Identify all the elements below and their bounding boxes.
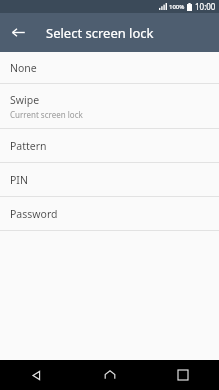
button[interactable]: None (0, 52, 219, 83)
staticText: PIN (10, 173, 28, 187)
staticText: Select screen lock (46, 24, 154, 42)
staticText: Swipe (10, 93, 40, 107)
staticText: Pattern (10, 139, 47, 153)
staticText: Current screen lock (10, 109, 83, 120)
button[interactable]: Password (0, 197, 219, 230)
staticText: 100% (169, 3, 185, 11)
staticText: None (10, 61, 37, 75)
button[interactable]: Back (0, 360, 73, 390)
staticText: 10:00 (195, 1, 216, 12)
button[interactable]: PIN (0, 163, 219, 196)
button[interactable]: Back (6, 20, 31, 45)
button[interactable]: Recents (146, 360, 219, 390)
button[interactable]: Swipe (0, 84, 219, 128)
button[interactable]: Pattern (0, 129, 219, 162)
button[interactable]: Home (73, 360, 146, 390)
staticText: Password (10, 207, 58, 221)
